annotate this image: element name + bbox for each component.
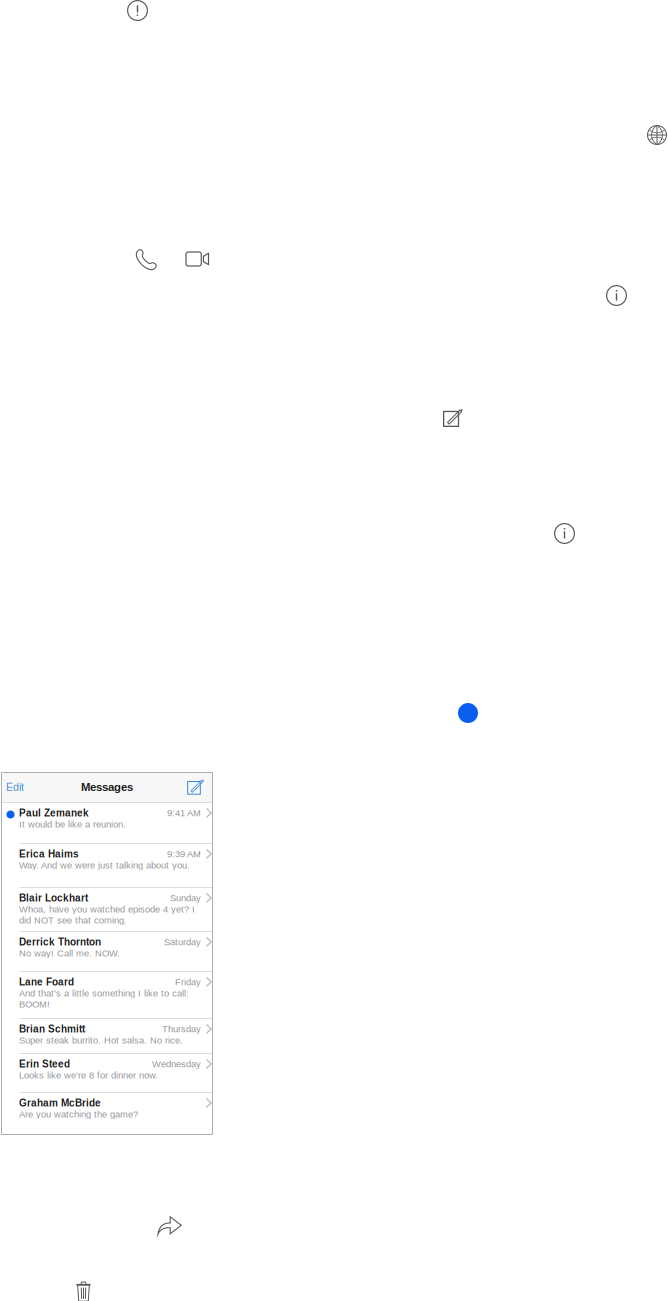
staticText: Super steak burrito. Hot salsa. No rice. (19, 1035, 183, 1045)
button[interactable]: Call (135, 249, 157, 271)
button[interactable]: Derrick Thornton (1, 932, 213, 971)
button[interactable]: Brian Schmitt (1, 1019, 213, 1053)
staticText: Whoa, have you watched episode 4 yet? I (19, 904, 195, 914)
staticText: did NOT see that coming. (19, 915, 127, 925)
staticText: Erin Steed (19, 1058, 70, 1070)
staticText: Are you watching the game? (19, 1109, 138, 1119)
staticText: Brian Schmitt (19, 1023, 85, 1035)
button[interactable]: Delete (76, 1280, 91, 1301)
staticText: Lane Foard (19, 976, 74, 988)
button[interactable]: Compose (443, 406, 464, 427)
button[interactable]: Edit (1, 772, 29, 801)
button[interactable]: Info (606, 285, 627, 306)
staticText: 9:41 AM (167, 808, 201, 818)
staticText: Derrick Thornton (19, 936, 101, 948)
staticText: Looks like we're 8 for dinner now. (19, 1070, 158, 1080)
button[interactable]: Blair Lockhart (1, 888, 213, 931)
staticText: Graham McBride (19, 1097, 101, 1109)
button[interactable]: Alert (127, 0, 148, 21)
staticText: Messages (81, 781, 133, 793)
button[interactable]: Globe (647, 125, 667, 145)
button[interactable]: Details (554, 523, 575, 544)
staticText: Paul Zemanek (19, 807, 89, 819)
staticText: And that's a little something I like to … (19, 988, 189, 998)
staticText: 9:39 AM (167, 849, 201, 859)
staticText: No way! Call me. NOW. (19, 948, 120, 958)
button[interactable]: Erin Steed (1, 1054, 213, 1092)
staticText: BOOM! (19, 999, 50, 1009)
staticText: Thursday (162, 1024, 201, 1034)
staticText: It would be like a reunion. (19, 819, 126, 829)
staticText: Way. And we were just talking about you. (19, 860, 190, 870)
button[interactable]: Graham McBride (1, 1093, 213, 1135)
button[interactable]: Lane Foard (1, 972, 213, 1018)
staticText: Sunday (170, 893, 201, 903)
staticText: Saturday (164, 937, 201, 947)
staticText: Friday (175, 977, 201, 987)
staticText: Edit (6, 781, 24, 793)
button[interactable]: Paul Zemanek (1, 803, 213, 843)
button[interactable]: Erica Haims (1, 844, 213, 887)
staticText: Wednesday (152, 1059, 201, 1069)
button[interactable]: Compose (182, 772, 213, 802)
button[interactable]: Share (157, 1216, 182, 1235)
button[interactable]: Video call (186, 252, 209, 266)
staticText: Erica Haims (19, 848, 79, 860)
staticText: Blair Lockhart (19, 892, 88, 904)
